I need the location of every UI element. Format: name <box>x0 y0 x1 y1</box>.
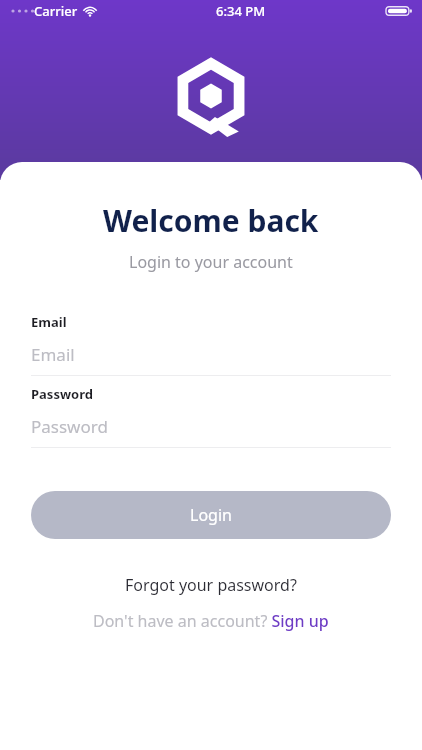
staticText: Login <box>190 504 232 526</box>
staticText: 6:34 PM <box>216 2 266 20</box>
staticText: Don't have an account? Sign up <box>93 610 329 632</box>
staticText: Welcome back <box>103 200 319 241</box>
button[interactable]: Don't have an account? Sign up <box>85 608 337 634</box>
staticText: Forgot your password? <box>125 574 297 596</box>
button[interactable]: Password <box>31 415 391 437</box>
staticText: Email <box>31 343 75 365</box>
staticText: Login to your account <box>129 251 293 273</box>
staticText: Password <box>31 385 93 403</box>
staticText: Carrier <box>34 2 78 20</box>
staticText: Email <box>31 313 67 331</box>
button[interactable]: Email <box>31 343 391 365</box>
button[interactable]: Login <box>31 491 391 539</box>
button[interactable]: Forgot your password? <box>117 572 305 598</box>
staticText: Password <box>31 415 108 437</box>
